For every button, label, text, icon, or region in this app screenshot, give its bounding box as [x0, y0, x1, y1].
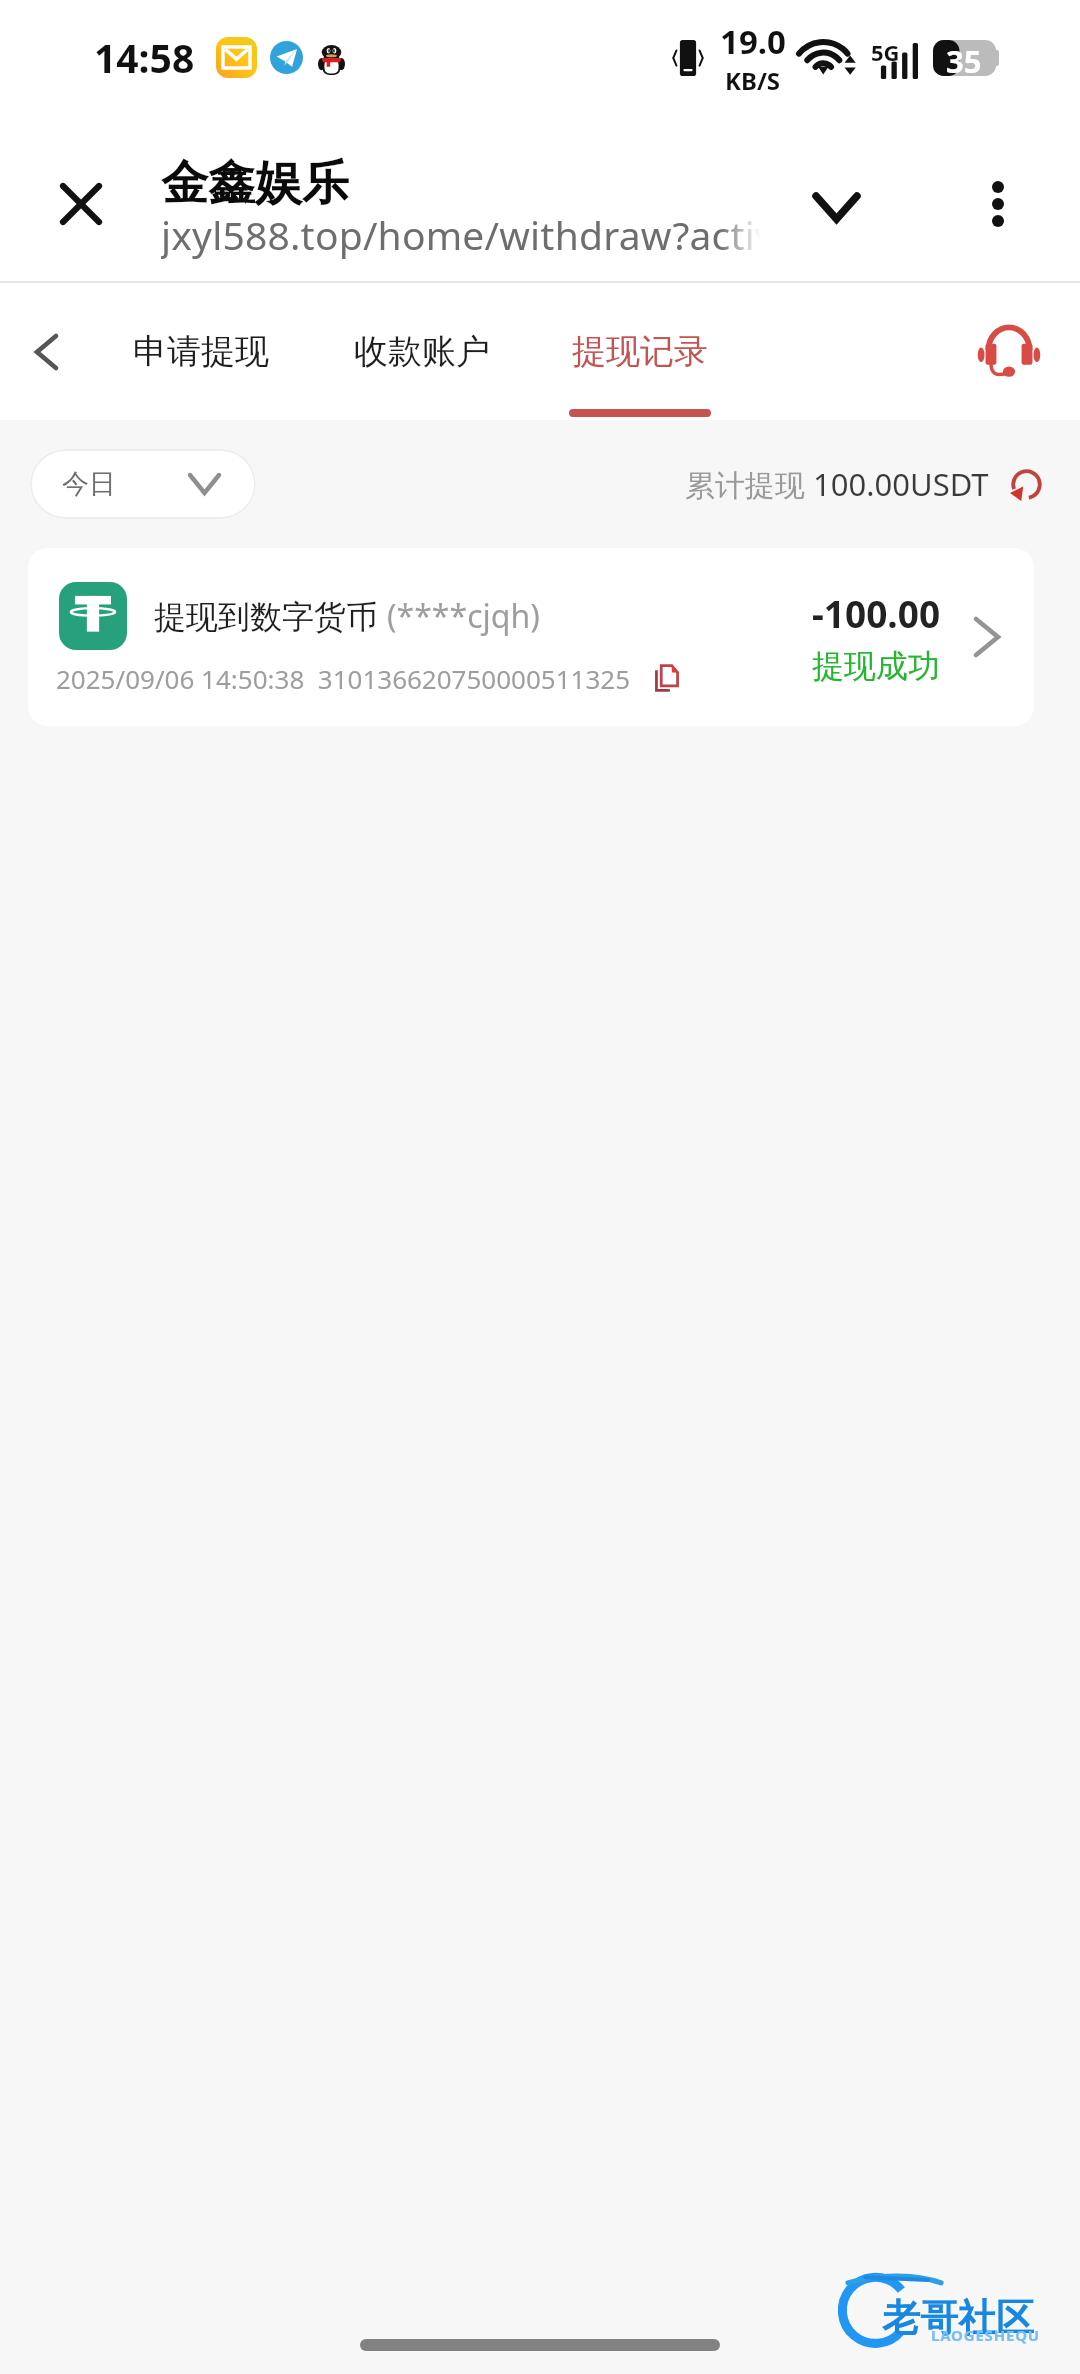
staticText: jxyl588.top/home/withdraw?active=1 — [161, 208, 761, 261]
staticText: 提现记录 — [572, 330, 708, 373]
staticText: 100.00USDT — [813, 463, 989, 505]
button[interactable]: Close — [21, 144, 141, 264]
staticText: 提现到数字货币 — [154, 594, 387, 638]
button[interactable]: Expand — [776, 147, 896, 267]
staticText: 提现成功 — [812, 646, 940, 686]
button[interactable]: Customer service — [954, 297, 1064, 407]
staticText: 19.0 — [720, 19, 786, 64]
button[interactable]: 申请提现 — [115, 283, 287, 420]
staticText: 35 — [946, 40, 982, 76]
staticText: LAOGESHEQU — [931, 2325, 1040, 2344]
button[interactable]: 提现到数字货币 — [28, 548, 1034, 726]
staticText: 14:58 — [94, 31, 195, 84]
button[interactable]: Copy — [645, 656, 689, 700]
staticText: 收款账户 — [354, 330, 490, 373]
button[interactable]: Back — [0, 292, 92, 412]
staticText: 老哥社区 — [882, 2294, 1034, 2342]
staticText: 5G — [871, 37, 900, 67]
button[interactable]: 今日 — [30, 449, 256, 519]
staticText: 2025/09/06 14:50:38 31013662075000051132… — [56, 661, 631, 696]
button[interactable]: 提现记录 — [554, 283, 726, 420]
button[interactable]: 收款账户 — [336, 283, 508, 420]
staticText: KB/S — [725, 64, 781, 97]
staticText: -100.00 — [812, 588, 941, 638]
staticText: 金鑫娱乐 — [161, 154, 349, 213]
staticText: 今日 — [62, 467, 116, 501]
staticText: 累计提现 — [685, 464, 813, 505]
button[interactable]: Refresh — [1003, 461, 1049, 507]
button[interactable]: More options — [938, 144, 1058, 264]
staticText: (****cjqh) — [387, 594, 540, 638]
staticText: 申请提现 — [133, 330, 269, 373]
